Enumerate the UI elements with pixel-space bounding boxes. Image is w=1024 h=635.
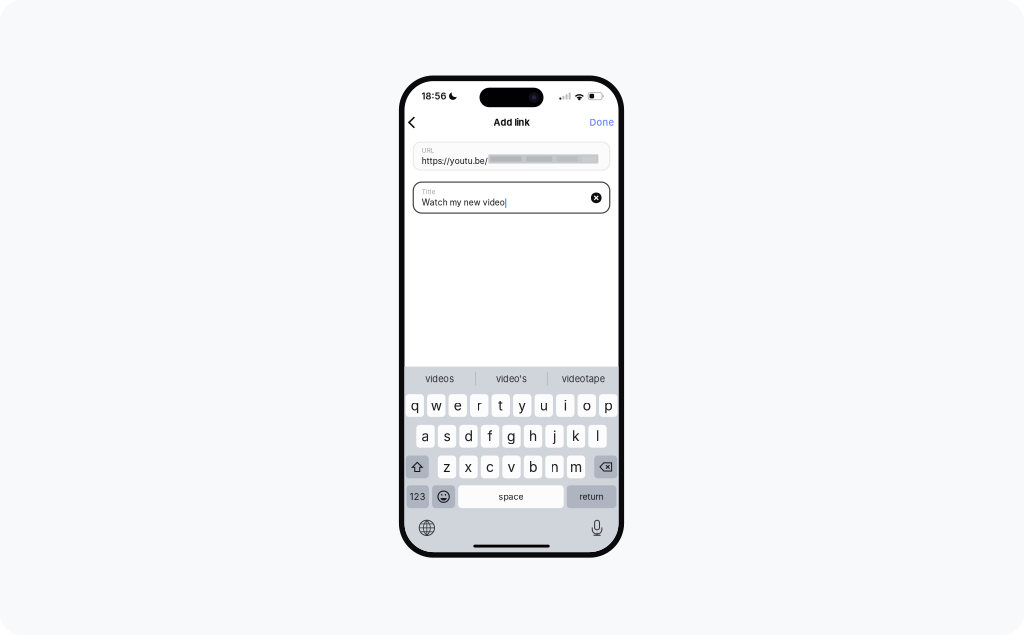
button[interactable]: video's	[476, 367, 547, 391]
button[interactable]: q	[405, 394, 424, 417]
staticText: l	[596, 428, 599, 445]
staticText: v	[507, 458, 515, 475]
staticText: 123	[410, 491, 426, 502]
button[interactable]: h	[524, 425, 542, 448]
staticText: y	[518, 397, 526, 414]
staticText: videotape	[562, 373, 605, 384]
button[interactable]: t	[491, 394, 510, 417]
button[interactable]: Dictate	[586, 515, 608, 541]
button[interactable]: videos	[404, 367, 475, 391]
button[interactable]: k	[567, 425, 585, 448]
button[interactable]: l	[588, 425, 607, 448]
button[interactable]: o	[577, 394, 596, 417]
staticText: q	[411, 397, 419, 414]
staticText: p	[604, 397, 612, 414]
button[interactable]: c	[481, 455, 499, 478]
staticText: Watch my new video	[422, 197, 505, 207]
staticText: space	[498, 491, 523, 502]
staticText: return	[580, 491, 604, 502]
staticText: https://youtu.be/	[422, 156, 488, 166]
button[interactable]: y	[513, 394, 531, 417]
button[interactable]: z	[438, 455, 456, 478]
staticText: Done	[589, 117, 613, 128]
button[interactable]: Clear text	[590, 192, 602, 204]
staticText: h	[529, 428, 537, 445]
staticText: n	[550, 458, 558, 475]
button[interactable]: p	[599, 394, 617, 417]
button[interactable]: m	[567, 455, 585, 478]
staticText: Title	[422, 188, 436, 196]
staticText: Add link	[493, 117, 529, 128]
button[interactable]: x	[459, 455, 478, 478]
button[interactable]: 123	[407, 485, 429, 508]
staticText: s	[443, 428, 450, 445]
button[interactable]: u	[534, 394, 553, 417]
staticText: j	[553, 428, 556, 445]
button[interactable]: n	[545, 455, 564, 478]
button[interactable]: space	[458, 485, 564, 508]
staticText: x	[464, 458, 472, 475]
staticText: URL	[422, 147, 435, 154]
staticText: video's	[496, 373, 527, 384]
staticText: u	[540, 397, 548, 414]
button[interactable]: v	[502, 455, 521, 478]
staticText: k	[572, 428, 580, 445]
staticText: i	[564, 397, 567, 414]
staticText: e	[454, 397, 462, 414]
button[interactable]: r	[470, 394, 488, 417]
button[interactable]: Delete	[594, 455, 617, 478]
staticText: z	[443, 458, 451, 475]
button[interactable]: Shift	[406, 455, 429, 478]
button[interactable]: j	[545, 425, 564, 448]
button[interactable]: a	[416, 425, 435, 448]
staticText: 18:56	[421, 90, 446, 102]
staticText: videos	[425, 373, 454, 384]
staticText: b	[529, 458, 537, 475]
button[interactable]: videotape	[548, 367, 619, 391]
staticText: w	[431, 397, 442, 414]
button[interactable]: Done	[587, 112, 616, 133]
button[interactable]: d	[459, 425, 478, 448]
button[interactable]: s	[438, 425, 456, 448]
staticText: m	[570, 458, 582, 475]
staticText: g	[507, 428, 516, 445]
button[interactable]: i	[556, 394, 574, 417]
button[interactable]: Emoji	[432, 485, 455, 508]
staticText: d	[464, 428, 472, 445]
button[interactable]: f	[481, 425, 499, 448]
staticText: r	[477, 397, 482, 414]
staticText: o	[583, 397, 591, 414]
button[interactable]: return	[567, 485, 616, 508]
staticText: t	[498, 397, 503, 414]
button[interactable]: w	[427, 394, 445, 417]
button[interactable]: g	[502, 425, 521, 448]
button[interactable]: e	[448, 394, 467, 417]
button[interactable]: Change keyboard	[414, 515, 439, 540]
staticText: f	[487, 428, 492, 445]
button[interactable]: b	[524, 455, 542, 478]
button[interactable]: Back	[403, 111, 420, 134]
staticText: a	[421, 428, 429, 445]
staticText: c	[486, 458, 494, 475]
